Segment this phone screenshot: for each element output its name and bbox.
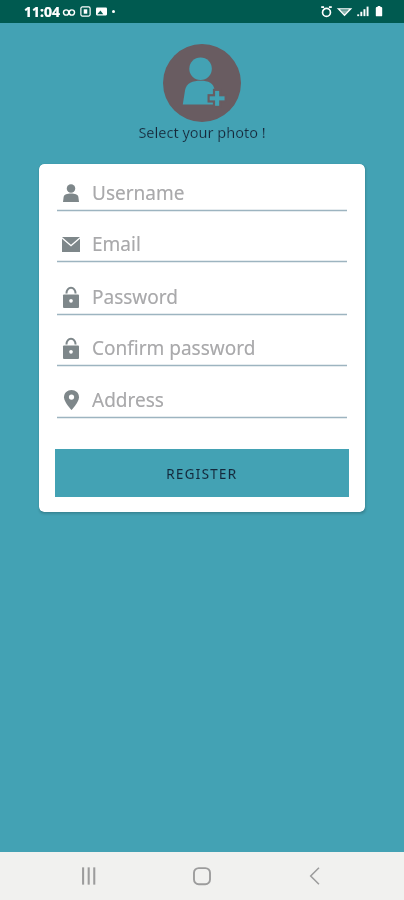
button[interactable]: Confirm password [39, 329, 365, 366]
button[interactable]: Home [178, 852, 226, 900]
button[interactable]: Email [39, 225, 365, 262]
staticText: Password [92, 284, 178, 310]
button[interactable]: Back [291, 852, 339, 900]
button[interactable]: Password [39, 278, 365, 315]
button[interactable]: Username [39, 174, 365, 211]
staticText: 11:04 [24, 2, 60, 21]
button[interactable]: Address [39, 381, 365, 418]
staticText: Username [92, 180, 185, 206]
button[interactable]: Select your photo [163, 44, 241, 122]
staticText: Confirm password [92, 335, 256, 361]
staticText: Select your photo ! [0, 122, 404, 142]
staticText: Address [92, 387, 164, 413]
staticText: Email [92, 231, 141, 257]
button[interactable]: REGISTER [55, 449, 349, 497]
staticText: REGISTER [166, 464, 238, 483]
button[interactable]: Recents [65, 852, 113, 900]
